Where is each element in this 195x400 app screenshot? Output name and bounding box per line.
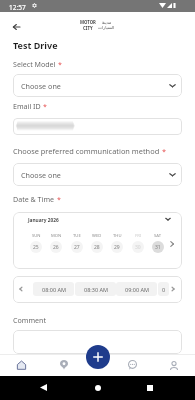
staticText: مدينة [102,20,112,25]
button[interactable]: Profile [160,354,188,376]
staticText: SUN [32,233,41,239]
button[interactable]: Next week [166,232,178,256]
staticText: السيارات [98,25,115,30]
staticText: Date & Time [13,194,55,204]
button[interactable]: Recents [140,378,159,397]
staticText: Choose preferred communication method [13,146,160,156]
staticText: 31 [155,244,161,251]
staticText: * [162,146,167,156]
staticText: 26 [53,244,59,251]
staticText: * [43,101,47,111]
staticText: WED [92,233,102,239]
button[interactable]: Next times [167,283,179,295]
button[interactable]: January 2026 [13,212,182,232]
button[interactable]: Choose one [13,163,182,186]
staticText: 12:57 [9,3,26,12]
button[interactable]: 0 [158,282,169,296]
button[interactable]: FRI [128,233,148,253]
button[interactable]: Previous times [15,283,27,295]
staticText: Select Model [13,59,56,69]
button[interactable]: Locations [50,354,78,376]
staticText: FRI [135,233,142,239]
staticText: 28 [94,244,100,251]
button[interactable]: Choose one [13,74,182,97]
staticText: * [58,59,62,69]
staticText: 08:00 AM [42,286,66,293]
button[interactable]: Comment [13,330,182,354]
button[interactable]: Home [7,354,35,376]
button[interactable]: 09:00 AM [116,282,157,296]
staticText: 0 [162,286,166,293]
button[interactable]: Add [86,345,110,369]
staticText: 08:30 AM [84,286,108,293]
button[interactable]: Home [88,378,107,397]
staticText: 30 [135,244,141,251]
staticText: 09:00 AM [125,286,149,293]
button[interactable]: THU [107,233,127,253]
button[interactable]: 08:00 AM [33,282,74,296]
button[interactable]: Back [34,378,53,397]
button[interactable]: SAT [148,233,168,253]
staticText: Test Drive [13,39,58,51]
button[interactable]: Messages [118,354,146,376]
button[interactable]: TUE [67,233,87,253]
staticText: January 2026 [28,217,59,224]
staticText: 29 [114,244,120,251]
staticText: * [57,194,61,204]
staticText: Email ID [13,101,41,111]
button[interactable]: Email ID [13,118,182,135]
staticText: SAT [154,233,162,239]
staticText: 27 [74,244,80,251]
staticText: 25 [33,244,39,251]
staticText: Choose one [21,170,61,180]
staticText: MOTOR [80,19,96,25]
staticText: THU [113,233,122,239]
staticText: CITY [83,25,93,31]
staticText: Choose one [21,81,61,91]
button[interactable]: Back [8,18,25,35]
button[interactable]: 08:30 AM [75,282,116,296]
staticText: TUE [73,233,81,239]
button[interactable]: SUN [26,233,46,253]
button[interactable]: MON [46,233,66,253]
button[interactable]: WED [87,233,107,253]
staticText: MON [51,233,62,239]
staticText: Comment [13,315,46,325]
